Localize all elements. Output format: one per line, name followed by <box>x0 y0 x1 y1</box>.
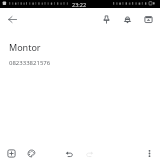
button[interactable]: Back <box>4 11 21 28</box>
button[interactable]: Archive <box>140 11 156 27</box>
button[interactable]: Undo <box>61 145 77 160</box>
staticText: 082333821576 <box>9 59 51 67</box>
button[interactable]: Reminder <box>119 11 135 27</box>
button[interactable]: Pin <box>98 11 114 27</box>
staticText: Montor <box>9 41 41 53</box>
button[interactable]: Redo <box>81 145 97 160</box>
button[interactable]: Change colour <box>23 145 39 160</box>
button[interactable]: Add <box>3 145 19 160</box>
button[interactable]: More options <box>141 145 157 160</box>
staticText: 23:22 <box>72 1 87 8</box>
